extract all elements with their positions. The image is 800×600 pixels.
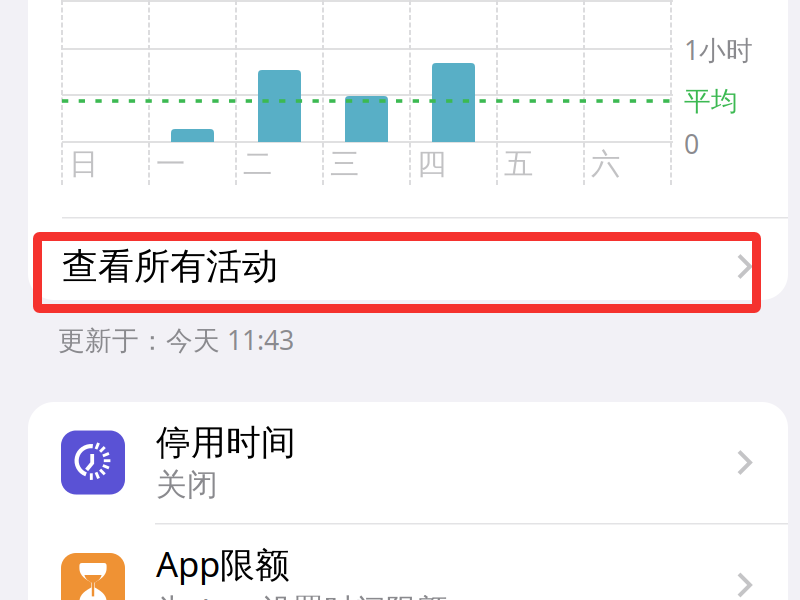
staticText: 四 bbox=[417, 146, 446, 182]
staticText: 关闭 bbox=[156, 466, 218, 504]
staticText: 查看所有活动 bbox=[62, 244, 278, 289]
staticText: 1小时 bbox=[684, 32, 753, 67]
button[interactable]: 停用时间 bbox=[28, 402, 788, 523]
staticText: 平均 bbox=[684, 85, 738, 118]
staticText: 五 bbox=[504, 146, 533, 182]
staticText: 日 bbox=[69, 146, 98, 182]
button[interactable]: App限额 bbox=[28, 524, 788, 600]
staticText: 二 bbox=[243, 146, 272, 182]
staticText: 为 App 设置时间限额 bbox=[156, 589, 448, 600]
staticText: 0 bbox=[684, 126, 699, 161]
staticText: 一 bbox=[156, 146, 185, 182]
staticText: 六 bbox=[591, 146, 620, 182]
staticText: App限额 bbox=[156, 540, 290, 587]
button[interactable]: 查看所有活动 bbox=[28, 233, 788, 300]
staticText: 更新于：今天 11:43 bbox=[58, 322, 294, 357]
staticText: 三 bbox=[330, 146, 359, 182]
staticText: 停用时间 bbox=[156, 421, 296, 464]
